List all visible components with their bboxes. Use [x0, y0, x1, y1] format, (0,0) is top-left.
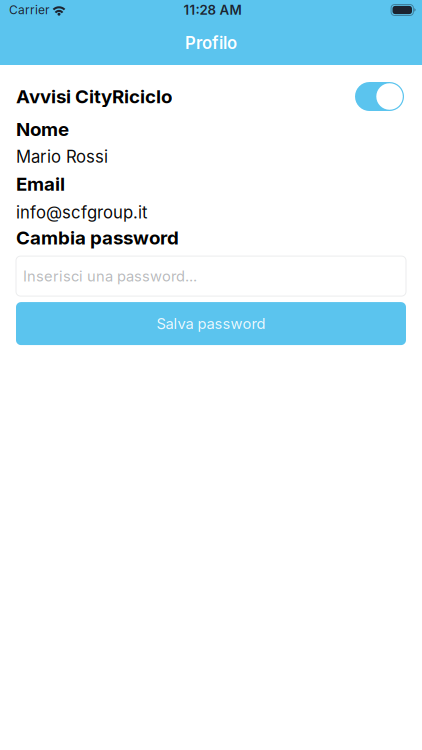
navigationBar: Profilo: [0, 0, 422, 65]
staticText: Avvisi CityRiciclo: [16, 85, 172, 108]
staticText: Mario Rossi: [16, 147, 108, 167]
staticText: Profilo: [185, 33, 237, 53]
staticText: Salva password: [156, 315, 265, 332]
button[interactable]: Salva password: [16, 302, 406, 345]
staticText: info@scfgroup.it: [16, 202, 147, 222]
staticText: Nome: [16, 118, 69, 141]
staticText: Cambia password: [16, 226, 179, 249]
staticText: Carrier: [9, 3, 50, 17]
staticText: 11:28 AM: [183, 2, 241, 18]
staticText: Inserisci una password...: [23, 267, 197, 285]
staticText: Email: [16, 173, 65, 195]
button[interactable]: Avvisi CityRiciclo: [355, 82, 406, 111]
secureTextField[interactable]: Inserisci una password...: [16, 256, 406, 296]
